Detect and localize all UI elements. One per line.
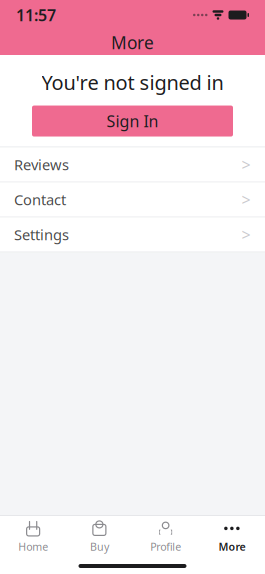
button[interactable]: Settings bbox=[0, 218, 265, 252]
staticText: Reviews bbox=[14, 155, 69, 174]
button[interactable]: More bbox=[199, 516, 265, 558]
button[interactable]: Profile bbox=[132, 516, 199, 558]
button[interactable]: Reviews bbox=[0, 148, 265, 182]
button[interactable]: Home bbox=[0, 516, 66, 558]
button[interactable]: Buy bbox=[66, 516, 132, 558]
button[interactable]: Sign In bbox=[32, 106, 233, 137]
staticText: Sign In bbox=[106, 110, 158, 132]
staticText: Contact bbox=[14, 190, 66, 209]
staticText: Buy bbox=[90, 539, 109, 554]
staticText: > bbox=[241, 224, 250, 245]
staticText: You're not signed in bbox=[41, 69, 223, 96]
button[interactable]: Contact bbox=[0, 183, 265, 217]
staticText: More bbox=[218, 539, 245, 554]
staticText: > bbox=[241, 189, 250, 210]
staticText: Home bbox=[18, 539, 48, 554]
staticText: More bbox=[111, 31, 154, 54]
staticText: 11:57 bbox=[16, 4, 56, 26]
staticText: > bbox=[241, 154, 250, 175]
staticText: Profile bbox=[150, 539, 181, 554]
staticText: Settings bbox=[14, 225, 69, 244]
